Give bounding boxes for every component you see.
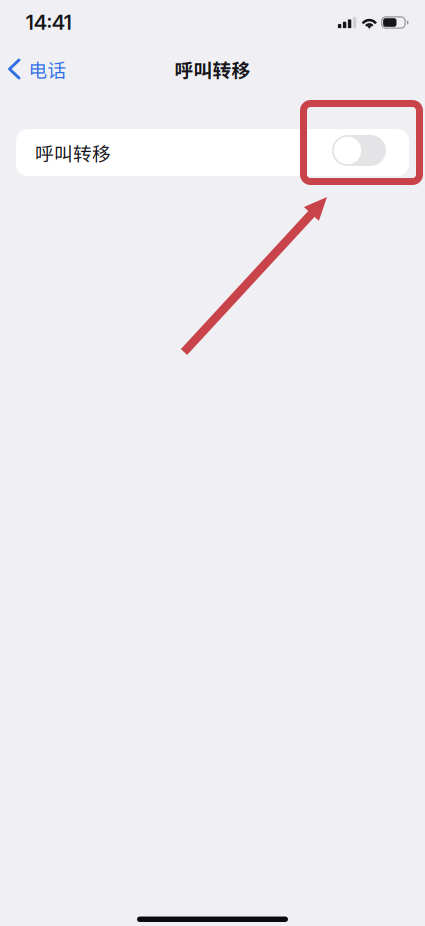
staticText: 呼叫转移 xyxy=(35,139,111,166)
staticText: 电话 xyxy=(28,55,66,82)
button[interactable]: 呼叫转移 xyxy=(332,135,386,170)
staticText: 呼叫转移 xyxy=(174,55,250,82)
staticText: 14:41 xyxy=(26,10,72,35)
button[interactable]: 电话 xyxy=(0,48,76,89)
